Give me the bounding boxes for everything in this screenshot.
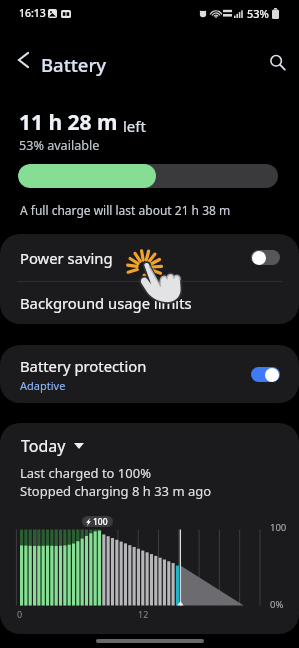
button[interactable]: Battery protection — [0, 345, 299, 403]
staticText: Background usage limits — [20, 293, 192, 313]
staticText: 100 — [270, 521, 287, 534]
staticText: Adaptive — [20, 378, 66, 393]
staticText: 100 — [93, 516, 108, 527]
button[interactable]: Off — [251, 250, 280, 265]
staticText: A full charge will last about 21 h 38 m — [20, 202, 231, 218]
staticText: 0% — [270, 598, 284, 611]
staticText: Last charged to 100% — [20, 464, 151, 482]
staticText: left — [123, 116, 146, 136]
staticText: Today — [21, 435, 66, 457]
button[interactable]: Navigate up — [8, 45, 38, 75]
button[interactable]: Today — [16, 433, 89, 459]
staticText: 12 — [138, 608, 149, 620]
staticText: 0 — [17, 608, 23, 620]
staticText: 53% — [247, 6, 269, 21]
staticText: 53% available — [19, 137, 100, 154]
staticText: Stopped charging 8 h 33 m ago — [20, 482, 212, 500]
staticText: 16:13 — [19, 6, 46, 20]
button[interactable]: Search — [262, 47, 292, 77]
staticText: Power saving — [20, 248, 113, 268]
staticText: Battery — [41, 52, 107, 77]
button[interactable]: Power saving — [0, 234, 299, 281]
staticText: 11 h 28 m — [19, 108, 118, 137]
button[interactable]: On — [251, 367, 280, 382]
button[interactable]: Background usage limits — [0, 282, 299, 324]
staticText: Battery protection — [20, 356, 147, 376]
